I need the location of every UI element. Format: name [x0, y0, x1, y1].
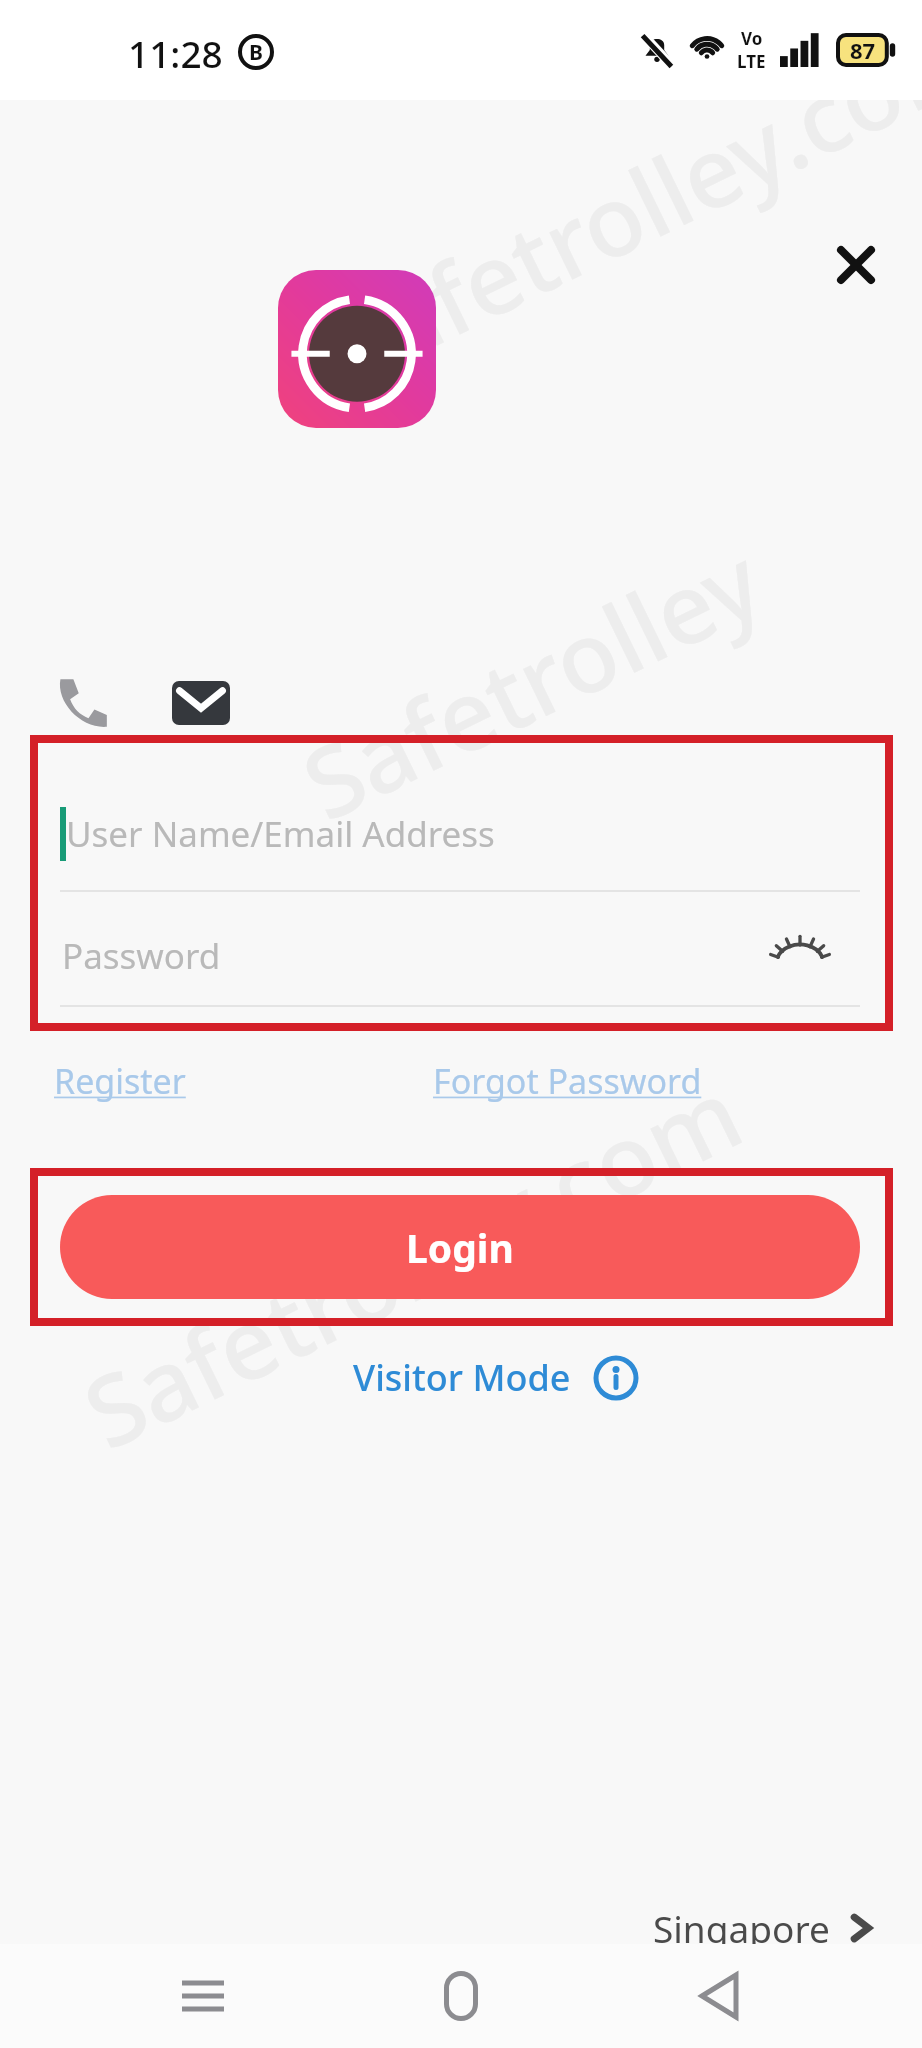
staticText: Vo: [741, 27, 763, 50]
button[interactable]: Close: [816, 225, 896, 305]
staticText: LTE: [737, 50, 766, 73]
button[interactable]: Email login: [170, 672, 232, 734]
staticText: Login: [406, 1221, 514, 1274]
button[interactable]: Password: [60, 900, 860, 1010]
staticText: Forgot Password: [433, 1058, 702, 1104]
staticText: 11:28: [128, 28, 223, 78]
staticText: B: [249, 38, 263, 67]
button[interactable]: Visitor Mode: [353, 1353, 639, 1402]
staticText: 87: [850, 35, 876, 65]
staticText: Register: [54, 1058, 186, 1104]
staticText: Safetrolley.com: [307, 0, 922, 412]
button[interactable]: Show password: [768, 926, 832, 990]
button[interactable]: Recents: [148, 1944, 258, 2048]
staticText: Password: [62, 932, 221, 980]
button[interactable]: Home: [406, 1944, 516, 2048]
staticText: User Name/Email Address: [66, 810, 495, 858]
staticText: Safetrolley: [281, 514, 781, 848]
button[interactable]: User Name/Email Address: [60, 778, 860, 890]
staticText: Visitor Mode: [353, 1353, 571, 1402]
staticText: Safetrolley.com: [62, 1045, 762, 1477]
staticText: Singapore: [653, 1903, 830, 1953]
button[interactable]: Register: [54, 1058, 186, 1104]
button[interactable]: App logo: [278, 270, 436, 428]
button[interactable]: Singapore: [653, 1903, 878, 1953]
button[interactable]: Login: [60, 1195, 860, 1299]
button[interactable]: Back: [664, 1944, 774, 2048]
button[interactable]: Forgot Password: [433, 1058, 702, 1104]
button[interactable]: Phone login: [50, 670, 114, 734]
